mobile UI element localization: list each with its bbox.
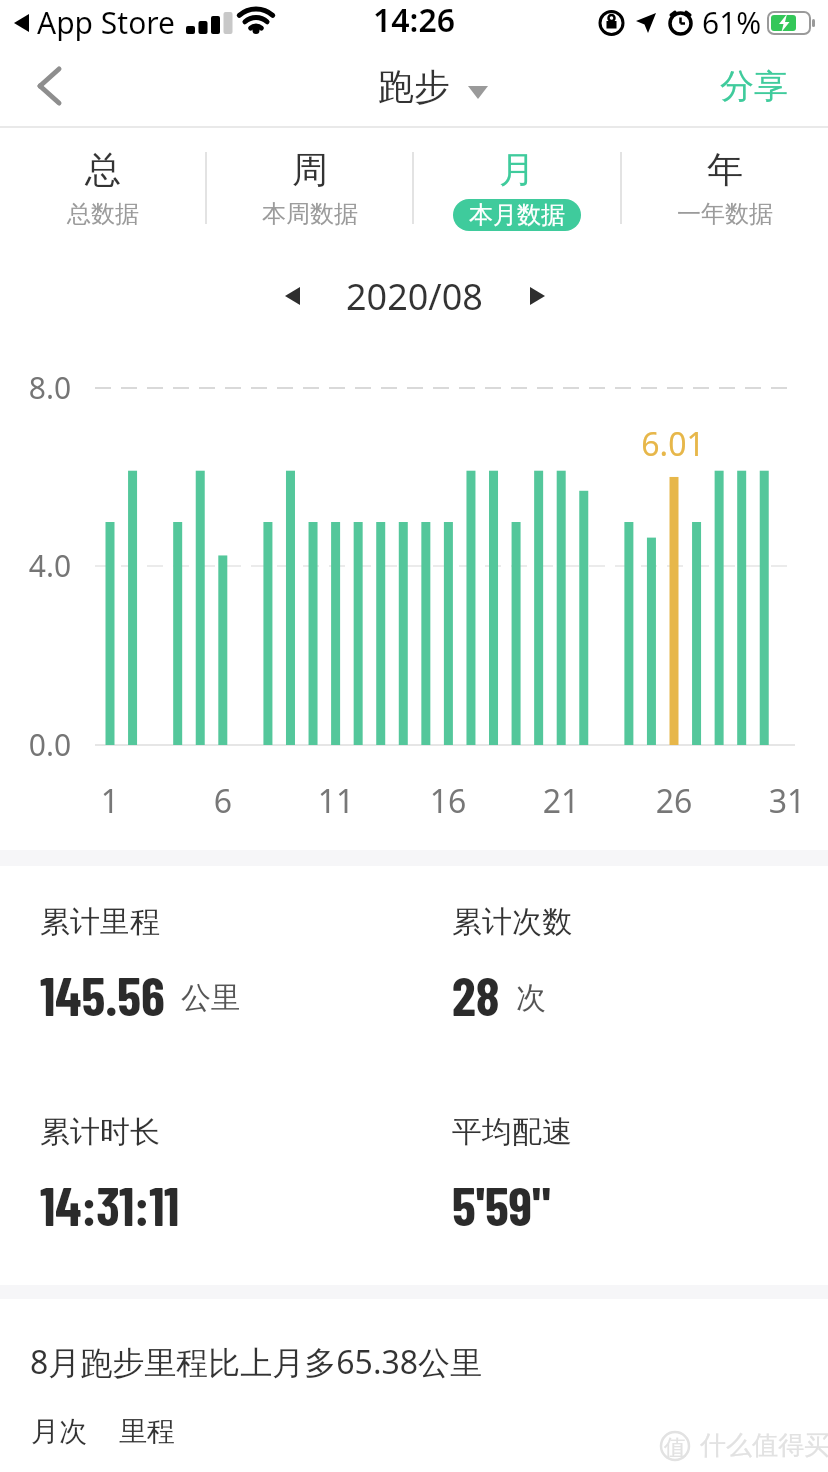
button[interactable]: 年 <box>622 128 828 240</box>
staticText: 26 <box>644 779 704 823</box>
staticText: 一年数据 <box>677 199 773 229</box>
staticText: 6 <box>193 779 253 823</box>
staticText: 值 <box>664 1434 686 1462</box>
button[interactable]: 月次 <box>31 1414 87 1449</box>
staticText: 周 <box>292 147 328 192</box>
staticText: 本周数据 <box>262 199 358 229</box>
staticText: 公里 <box>181 979 241 1017</box>
staticText: 月 <box>499 147 535 192</box>
staticText: 年 <box>707 147 743 192</box>
staticText: 11 <box>306 779 366 823</box>
staticText: 14:26 <box>373 0 456 42</box>
staticText: 跑步 <box>378 64 450 109</box>
staticText: 8月跑步里程比上月多65.38公里 <box>30 1340 483 1384</box>
staticText: 16 <box>418 779 478 823</box>
staticText: 累计里程 <box>40 903 160 941</box>
staticText: 总数据 <box>67 199 139 229</box>
button[interactable] <box>515 274 559 318</box>
button[interactable]: 总 <box>0 128 205 240</box>
staticText: 14:31:11 <box>40 1172 180 1237</box>
staticText: 31 <box>757 779 817 823</box>
staticText: 累计时长 <box>40 1113 160 1151</box>
button[interactable]: 里程 <box>119 1414 175 1449</box>
staticText: 4.0 <box>22 545 78 586</box>
staticText: 21 <box>531 779 591 823</box>
staticText: 次 <box>516 979 546 1017</box>
staticText: 6.01 <box>623 422 723 466</box>
staticText: 什么值得买 <box>700 1429 828 1462</box>
button[interactable]: 周 <box>207 128 412 240</box>
staticText: 2020/08 <box>346 272 483 321</box>
staticText: 5'59" <box>452 1172 551 1237</box>
button[interactable]: 分享 <box>720 65 788 108</box>
button[interactable]: 月 <box>414 128 620 240</box>
staticText: 1 <box>80 779 140 823</box>
staticText: 总 <box>85 147 121 192</box>
staticText: 累计次数 <box>452 903 572 941</box>
button[interactable]: 跑步 <box>378 64 450 109</box>
staticText: 145.56 <box>40 962 165 1027</box>
staticText: 8.0 <box>22 367 78 408</box>
staticText: 28 <box>452 962 500 1027</box>
button[interactable] <box>270 274 314 318</box>
staticText: 本月数据 <box>469 200 565 230</box>
staticText: 0.0 <box>22 724 78 765</box>
staticText: 61% <box>702 2 762 43</box>
staticText: 平均配速 <box>452 1113 572 1151</box>
button[interactable] <box>28 64 72 108</box>
staticText: App Store <box>37 2 176 43</box>
